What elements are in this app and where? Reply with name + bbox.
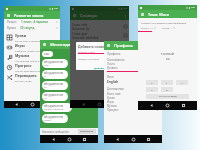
- button[interactable]: абсурдностью: [42, 70, 68, 79]
- staticText: ая: [166, 57, 170, 61]
- button[interactable]: ч: [176, 80, 188, 85]
- button[interactable]: Переводить: [4, 72, 60, 82]
- button[interactable]: Recents: [181, 103, 186, 108]
- staticText: Вы начали с занятие сегодня: [15, 39, 51, 42]
- staticText: абсурдностью: [44, 82, 64, 86]
- staticText: н: [151, 88, 153, 91]
- staticText: Как вы двигаетесь вперед: [15, 69, 47, 72]
- staticText: Прогресс: [107, 108, 119, 112]
- staticText: Добавить слово: [78, 44, 105, 48]
- staticText: Введите слово: [78, 50, 95, 53]
- staticText: абсурдностью: [44, 104, 64, 108]
- staticText: Время: [7, 26, 16, 30]
- staticText: 100: [191, 6, 195, 9]
- staticText: 5: [157, 100, 159, 104]
- staticText: абсурдностью: [44, 71, 64, 75]
- button[interactable]: ола: [42, 51, 53, 57]
- staticText: Очков: 1: [162, 26, 172, 29]
- button[interactable]: More options: [123, 14, 127, 18]
- staticText: Язык: [107, 75, 114, 79]
- staticText: English: [107, 80, 119, 84]
- staticText: 100: [123, 7, 127, 10]
- button[interactable]: я: [146, 80, 158, 85]
- button[interactable]: Время: [4, 25, 60, 31]
- button[interactable]: Уроки: [4, 32, 60, 42]
- button[interactable]: Recents: [45, 102, 50, 107]
- button[interactable]: Слово: тебе: [70, 22, 129, 31]
- button[interactable]: н: [146, 87, 158, 92]
- button[interactable]: Home: [165, 103, 170, 108]
- button[interactable]: т: [161, 80, 173, 85]
- button[interactable]: абсурдностью: [42, 92, 68, 101]
- button[interactable]: Menu: [42, 42, 47, 47]
- staticText: он: [44, 86, 47, 89]
- button[interactable]: Back: [149, 103, 154, 108]
- button[interactable]: Back: [14, 102, 19, 107]
- staticText: Развитие языка: [14, 13, 44, 18]
- button[interactable]: Recents: [113, 102, 118, 107]
- button[interactable]: абсурдностью: [42, 81, 68, 90]
- staticText: предмет и близкие: [44, 108, 64, 111]
- staticText: Уроки: [107, 96, 115, 100]
- staticText: Почта: [107, 62, 115, 66]
- button[interactable]: Recents: [146, 137, 151, 142]
- staticText: 31: [156, 92, 159, 96]
- staticText: Мессенджер: [50, 42, 77, 48]
- staticText: Музыка: [107, 104, 117, 108]
- staticText: я: [151, 81, 153, 84]
- staticText: ОЧИСТИТЬ ВВОД: [159, 95, 177, 98]
- button[interactable]: Раздел: [4, 19, 60, 25]
- button[interactable]: абсурдностью: [42, 59, 68, 68]
- staticText: слов: [44, 64, 49, 67]
- button[interactable]: Игры: [4, 42, 60, 52]
- staticText: новый: [44, 119, 51, 122]
- staticText: Музыка: [15, 53, 30, 58]
- button[interactable]: Прогресс: [4, 62, 60, 72]
- button[interactable]: Слово: дрот: [70, 31, 129, 40]
- staticText: Быстро слово: [15, 79, 32, 82]
- button[interactable]: Menu: [106, 43, 111, 48]
- staticText: Словарь: [80, 13, 98, 19]
- staticText: Тема: Мясо: [148, 12, 170, 17]
- staticText: ола: [44, 52, 49, 56]
- staticText: Время: 14: [141, 26, 153, 29]
- staticText: ч: [181, 81, 183, 84]
- button[interactable]: абсурдностью: [42, 114, 68, 123]
- button[interactable]: абсурдностью: [42, 103, 72, 112]
- staticText: Введите значение: [78, 57, 100, 60]
- button[interactable]: ДОБАВИТЬ: [94, 66, 108, 69]
- button[interactable]: Back: [51, 137, 56, 142]
- button[interactable]: Музыка: [4, 52, 60, 62]
- staticText: Переводить: [15, 73, 37, 78]
- button[interactable]: Recents: [82, 137, 87, 142]
- button[interactable]: Back: [81, 102, 86, 107]
- staticText: Значение: бд: [72, 27, 90, 31]
- staticText: Слово: дрот: [72, 32, 88, 36]
- button[interactable]: ы: [161, 87, 173, 92]
- staticText: абсурдностью: [44, 60, 64, 64]
- staticText: Выбирай, чтобы играть с словами: [15, 49, 57, 52]
- button[interactable]: ОТПРАВИТЬ: [78, 129, 96, 134]
- button[interactable]: ОЧИСТИТЬ ВВОД: [146, 94, 189, 99]
- staticText: Слово: тебе: [72, 23, 88, 27]
- button[interactable]: Menu: [140, 12, 145, 17]
- staticText: Прогресс: [15, 63, 32, 68]
- button[interactable]: Home: [30, 102, 35, 107]
- staticText: абсурдностью: [44, 115, 64, 119]
- button[interactable]: Home: [131, 137, 136, 142]
- button[interactable]: Home: [97, 102, 102, 107]
- button[interactable]: Back: [115, 137, 120, 142]
- staticText: Игры: [107, 100, 114, 104]
- staticText: Раздел: [7, 20, 17, 24]
- button[interactable]: Menu: [6, 13, 11, 18]
- button[interactable]: Menu: [72, 13, 77, 18]
- button[interactable]: Home: [67, 137, 72, 142]
- staticText: ДОБАВИТЬ: [94, 66, 108, 69]
- staticText: Сложно: Со/Словами слова безбрежно: [141, 21, 187, 24]
- staticText: Достижения: [107, 87, 124, 91]
- staticText: Игры: [15, 43, 25, 48]
- staticText: 30 секунд: [20, 26, 35, 30]
